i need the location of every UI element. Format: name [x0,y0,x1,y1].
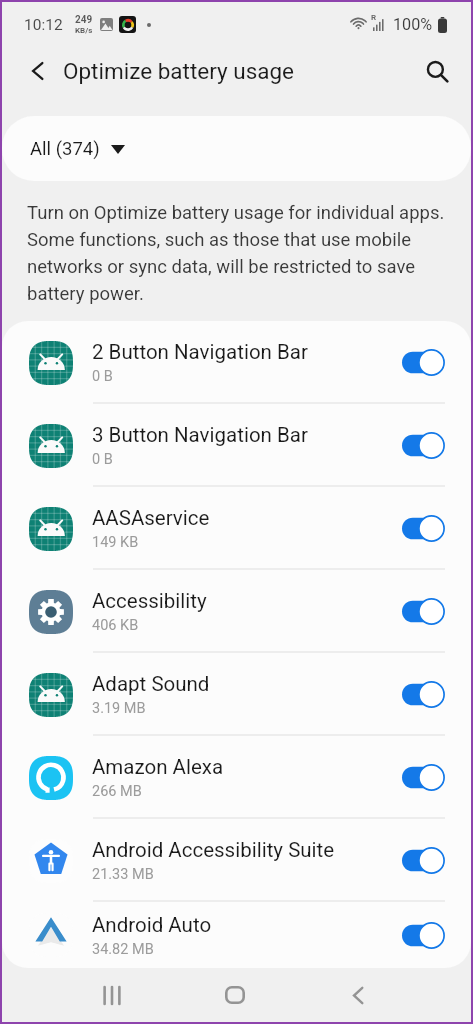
staticText: Optimize battery usage [63,58,295,84]
staticText: 21.33 MB [92,866,154,883]
staticText: 0 B [92,368,113,385]
button[interactable]: Adapt Sound [2,653,471,736]
button[interactable]: Recent apps [50,968,173,1022]
button[interactable]: Back [296,968,419,1022]
button[interactable]: Search [415,49,459,93]
button[interactable]: Accessibility [2,570,471,653]
staticText: Amazon Alexa [92,755,224,779]
staticText: Adapt Sound [92,672,210,696]
staticText: All (374) [30,138,100,160]
button[interactable]: Navigate up [15,49,59,93]
staticText: Android Auto [92,913,212,937]
button[interactable]: Optimize battery usage for Android Auto [402,922,445,949]
button[interactable]: 3 Button Navigation Bar [2,404,471,487]
staticText: 3.19 MB [92,700,146,717]
staticText: AASAservice [92,506,210,530]
staticText: 266 MB [92,783,142,800]
button[interactable]: Optimize battery usage for Adapt Sound [402,681,445,708]
staticText: 2 Button Navigation Bar [92,340,308,364]
button[interactable]: Android Accessibility Suite [2,819,471,902]
staticText: R [371,13,377,22]
staticText: KB/s [75,26,93,35]
staticText: Accessibility [92,589,207,613]
staticText: 100% [393,15,433,34]
button[interactable]: Optimize battery usage for Amazon Alexa [402,764,445,791]
staticText: 406 KB [92,617,139,634]
button[interactable]: Home [173,968,296,1022]
staticText: 34.82 MB [92,941,154,958]
button[interactable]: Amazon Alexa [2,736,471,819]
staticText: Turn on Optimize battery usage for indiv… [27,202,455,305]
button[interactable]: 2 Button Navigation Bar [2,321,471,404]
staticText: 10:12 [24,16,63,34]
button[interactable]: Optimize battery usage for Android Acces… [402,847,445,874]
staticText: 149 KB [92,534,139,551]
staticText: 0 B [92,451,113,468]
button[interactable]: Optimize battery usage for 2 Button Navi… [402,349,445,376]
staticText: Android Accessibility Suite [92,838,335,862]
button[interactable]: Android Auto [2,902,471,968]
button[interactable]: All (374) [2,116,471,181]
staticText: 3 Button Navigation Bar [92,423,308,447]
button[interactable]: Optimize battery usage for AASAservice [402,515,445,542]
button[interactable]: Optimize battery usage for 3 Button Navi… [402,432,445,459]
button[interactable]: AASAservice [2,487,471,570]
button[interactable]: Optimize battery usage for Accessibility [402,598,445,625]
staticText: 249 [75,14,93,26]
